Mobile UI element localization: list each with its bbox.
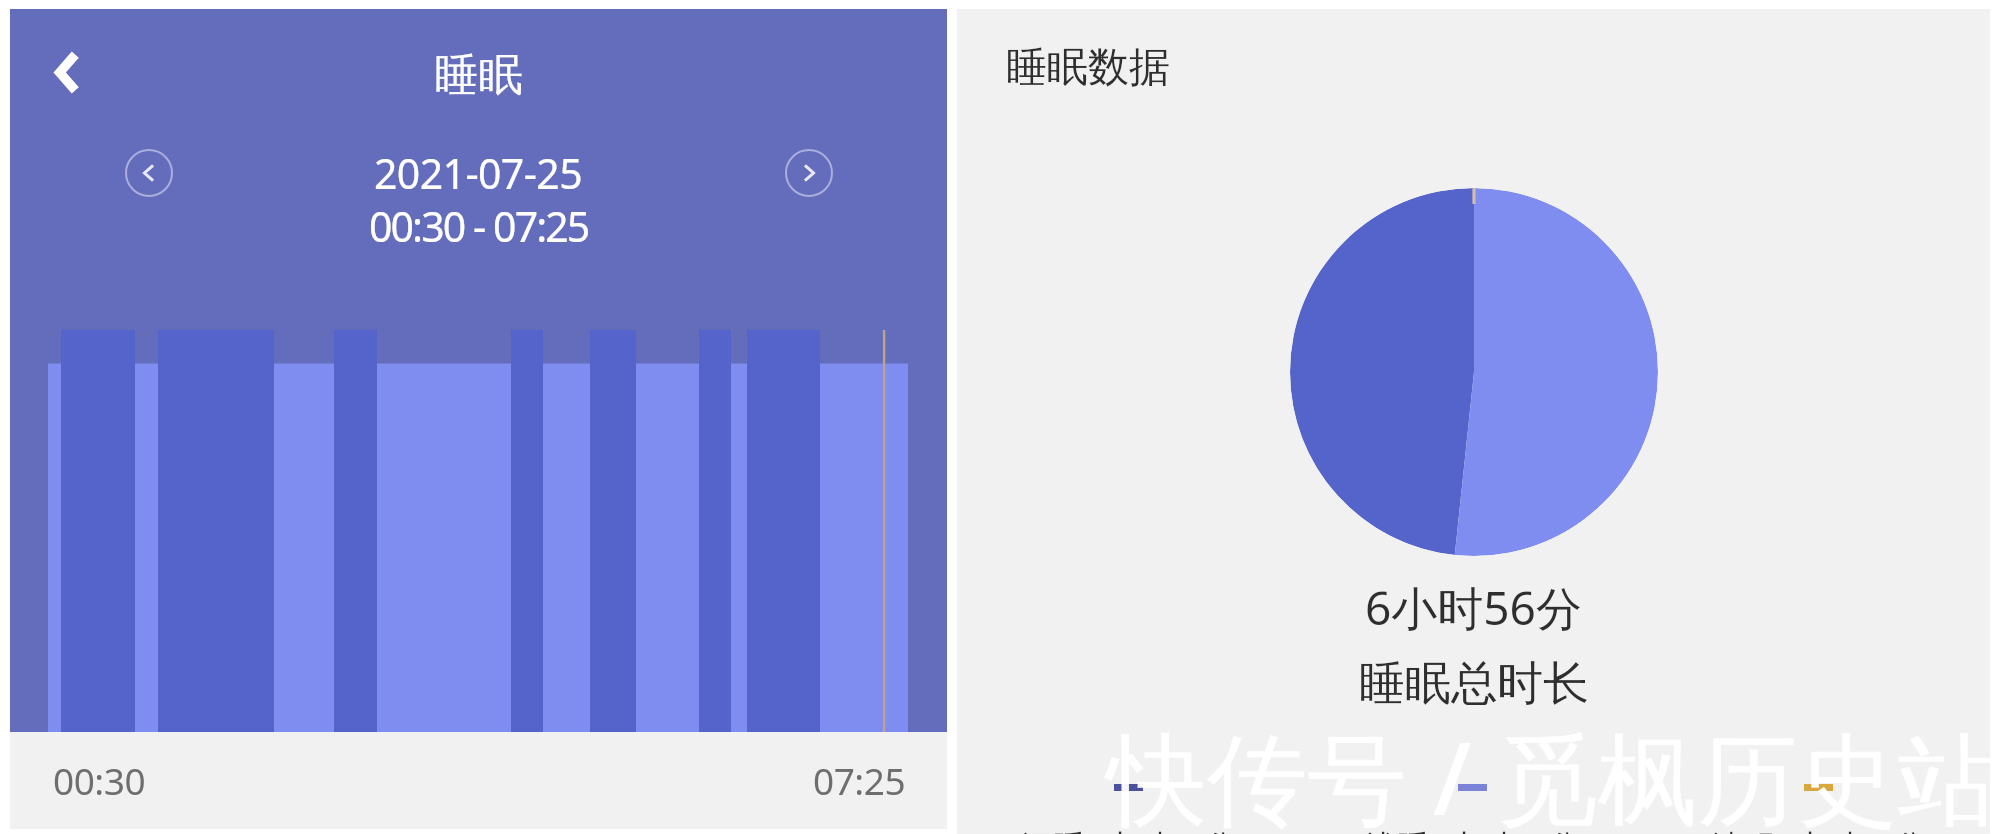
staticText: 07:25: [813, 755, 906, 805]
staticText: 6小时56分: [1365, 576, 1582, 639]
staticText: 2021-07-25: [374, 145, 583, 201]
button[interactable]: Sleep composition chart: [1290, 188, 1658, 556]
button[interactable]: 清醒0小时01分: [1708, 775, 1928, 834]
staticText: 浅睡5小时30分: [1365, 824, 1580, 834]
staticText: 睡眠总时长: [1359, 655, 1589, 713]
button[interactable]: Next day: [775, 139, 843, 207]
staticText: 睡眠: [10, 48, 947, 103]
staticText: 睡眠数据: [1006, 42, 1170, 94]
staticText: 00:30 - 07:25: [369, 198, 589, 254]
button[interactable]: Previous day: [115, 139, 183, 207]
staticText: 快传号 / 觅枫历史站: [1107, 708, 1998, 834]
button[interactable]: Back: [35, 36, 99, 108]
staticText: 00:30: [53, 755, 146, 805]
button[interactable]: Sleep stages timeline: [10, 330, 947, 732]
staticText: 清醒0小时01分: [1711, 824, 1926, 834]
button[interactable]: 深睡1小时25分: [1018, 775, 1238, 834]
button[interactable]: 浅睡5小时30分: [1362, 775, 1582, 834]
staticText: 深睡1小时25分: [1021, 824, 1236, 834]
